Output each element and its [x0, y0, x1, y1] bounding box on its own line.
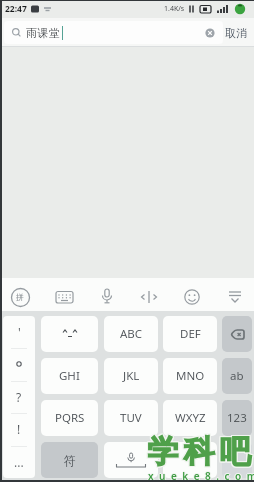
staticText: 学科吧 — [146, 433, 254, 472]
staticText: ! — [17, 421, 21, 437]
staticText: xueke8.com — [148, 469, 254, 482]
button[interactable] — [104, 442, 158, 478]
staticText: 学科吧 — [146, 431, 254, 470]
staticText: ABC — [120, 326, 143, 342]
button[interactable] — [140, 287, 158, 307]
button[interactable]: DEF — [163, 316, 217, 352]
button[interactable]: ! — [3, 413, 35, 445]
staticText: 学科吧 — [144, 432, 252, 471]
button[interactable]: JKL — [104, 358, 158, 394]
staticText: 学科吧 — [145, 432, 253, 471]
staticText: 雨课堂 — [26, 26, 61, 40]
staticText: TUV — [120, 410, 142, 426]
button[interactable] — [222, 442, 252, 478]
staticText: WXYZ — [175, 410, 206, 426]
staticText: 学科吧 — [144, 433, 252, 472]
staticText: MNO — [176, 368, 205, 384]
button[interactable]: TUV — [104, 400, 158, 436]
staticText: 123 — [227, 410, 247, 426]
button[interactable]: 拼 — [10, 287, 30, 307]
staticText: 学科吧 — [145, 431, 253, 470]
staticText: 22:47 — [5, 3, 27, 15]
button[interactable]: ' — [3, 316, 35, 348]
staticText: xueke8.com — [148, 470, 254, 482]
staticText: DEF — [180, 326, 201, 342]
button[interactable]: 取消 — [221, 22, 251, 44]
staticText: 符 — [64, 453, 76, 468]
staticText: 学科吧 — [146, 432, 254, 471]
staticText: GHI — [59, 368, 80, 384]
staticText: 中 — [185, 454, 195, 467]
button[interactable]: 123 — [222, 400, 252, 436]
button[interactable]: GHI — [41, 358, 98, 394]
button[interactable]: 中 — [163, 442, 217, 478]
staticText: xueke8.com — [148, 468, 254, 482]
staticText: ? — [16, 389, 22, 405]
button[interactable]: 符 — [41, 442, 98, 478]
button[interactable] — [41, 316, 98, 352]
button[interactable] — [183, 287, 201, 307]
staticText: ab — [230, 368, 244, 384]
button[interactable] — [222, 316, 252, 352]
staticText: xueke8.com — [147, 469, 254, 482]
staticText: xueke8.com — [149, 469, 254, 482]
button[interactable]: WXYZ — [163, 400, 217, 436]
staticText: ... — [14, 454, 24, 470]
staticText: 学科吧 — [145, 433, 253, 472]
button[interactable] — [55, 287, 75, 307]
staticText: 拼 — [16, 292, 24, 302]
button[interactable]: ... — [3, 446, 35, 478]
button[interactable]: PQRS — [41, 400, 98, 436]
staticText: 学科吧 — [144, 431, 252, 470]
button[interactable]: ? — [3, 381, 35, 413]
button[interactable] — [100, 287, 114, 307]
button[interactable]: MNO — [163, 358, 217, 394]
staticText: ' — [18, 324, 21, 340]
button[interactable]: ABC — [104, 316, 158, 352]
staticText: PQRS — [55, 410, 85, 426]
staticText: JKL — [123, 368, 140, 384]
button[interactable]: ab — [222, 358, 252, 394]
staticText: 取消 — [225, 26, 247, 40]
button[interactable] — [201, 24, 219, 42]
staticText: 1.4K/s — [164, 4, 185, 14]
button[interactable] — [226, 287, 244, 307]
button[interactable] — [3, 348, 35, 380]
button[interactable]: 雨课堂 — [4, 21, 223, 44]
